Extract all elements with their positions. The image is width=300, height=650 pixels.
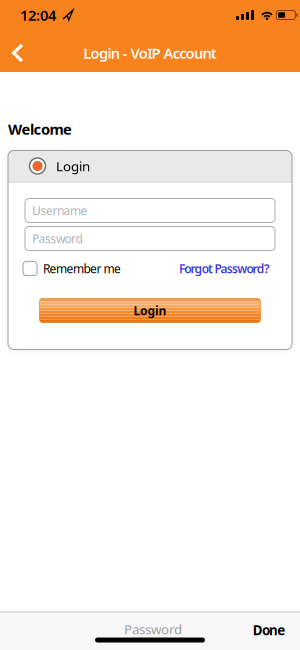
button[interactable]: Back xyxy=(3,38,33,68)
staticText: Username xyxy=(32,202,87,218)
staticText: Welcome xyxy=(8,119,72,139)
button[interactable]: Forgot Password? xyxy=(160,260,270,276)
staticText: Login xyxy=(56,157,90,175)
button[interactable]: Login xyxy=(8,157,292,175)
button[interactable]: Done xyxy=(244,618,294,642)
staticText: Login - VoIP Account xyxy=(83,43,217,63)
staticText: Password xyxy=(124,620,182,638)
staticText: Login xyxy=(133,302,166,318)
button[interactable]: Password xyxy=(25,226,275,250)
button[interactable]: Username xyxy=(25,198,275,222)
button[interactable]: Remember me xyxy=(23,260,121,276)
button[interactable]: Login xyxy=(39,298,260,322)
staticText: 12:04 xyxy=(20,5,56,25)
staticText: Password xyxy=(32,230,82,246)
staticText: Remember me xyxy=(43,260,121,276)
staticText: Done xyxy=(253,621,285,639)
staticText: Forgot Password? xyxy=(179,260,270,276)
